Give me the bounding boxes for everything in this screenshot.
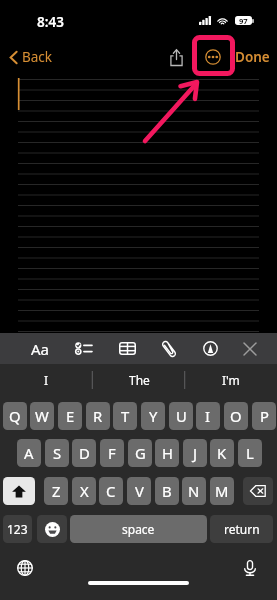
staticText: I (44, 372, 49, 388)
staticText: T (121, 406, 130, 426)
button[interactable]: Markup (195, 333, 225, 364)
staticText: B (162, 481, 172, 501)
button[interactable]: Table (112, 333, 142, 364)
button[interactable]: Backspace (243, 477, 273, 505)
button[interactable]: Done (234, 44, 270, 70)
button[interactable]: H (155, 439, 179, 467)
button[interactable]: C (99, 477, 123, 505)
staticText: O (230, 406, 242, 426)
button[interactable]: Attach (154, 333, 184, 364)
button[interactable]: Back (9, 44, 53, 70)
button[interactable]: Q (3, 402, 27, 430)
button[interactable]: More (200, 44, 226, 70)
button[interactable]: O (224, 402, 248, 430)
staticText: J (193, 443, 198, 463)
button[interactable]: Y (141, 402, 165, 430)
staticText: Q (9, 406, 21, 426)
staticText: M (215, 481, 229, 501)
button[interactable]: Format (25, 333, 55, 364)
staticText: U (176, 406, 187, 426)
button[interactable]: B (155, 477, 179, 505)
staticText: W (35, 406, 49, 426)
button[interactable]: W (30, 402, 54, 430)
button[interactable]: D (72, 439, 96, 467)
button[interactable]: 123 (3, 515, 32, 543)
button[interactable]: return (210, 515, 273, 543)
staticText: H (162, 443, 173, 463)
button[interactable]: I (0, 364, 93, 395)
button[interactable]: Share (163, 44, 189, 70)
button[interactable]: The (93, 364, 185, 395)
staticText: L (246, 443, 254, 463)
button[interactable]: L (238, 439, 262, 467)
button[interactable]: Close (235, 333, 265, 364)
button[interactable]: T (113, 402, 137, 430)
staticText: G (135, 443, 146, 463)
button[interactable]: Dictate (238, 556, 262, 580)
button[interactable]: space (70, 515, 207, 543)
button[interactable]: A (17, 439, 41, 467)
staticText: Aa (31, 339, 50, 359)
button[interactable]: U (169, 402, 193, 430)
button[interactable]: F (100, 439, 124, 467)
button[interactable]: Z (44, 477, 68, 505)
staticText: D (79, 443, 90, 463)
staticText: V (135, 481, 144, 501)
button[interactable]: J (183, 439, 207, 467)
staticText: K (217, 443, 227, 463)
staticText: Done (235, 48, 270, 66)
button[interactable]: S (45, 439, 69, 467)
button[interactable]: I (196, 402, 220, 430)
staticText: Z (52, 481, 61, 501)
button[interactable]: Shift (3, 477, 35, 505)
button[interactable]: N (182, 477, 206, 505)
staticText: return (224, 521, 260, 537)
button[interactable]: M (210, 477, 234, 505)
staticText: N (188, 481, 200, 501)
staticText: A (24, 443, 34, 463)
staticText: C (106, 481, 116, 501)
staticText: 97 (239, 16, 248, 25)
staticText: X (80, 481, 89, 501)
button[interactable]: V (127, 477, 151, 505)
staticText: I (205, 406, 211, 426)
staticText: Y (149, 406, 158, 426)
button[interactable]: Checklist (68, 333, 98, 364)
staticText: I'm (222, 372, 240, 388)
button[interactable]: P (252, 402, 276, 430)
button[interactable]: I'm (185, 364, 277, 395)
button[interactable]: Switch keyboard (13, 556, 37, 580)
staticText: S (53, 443, 62, 463)
staticText: space (122, 521, 155, 537)
button[interactable]: E (58, 402, 82, 430)
staticText: The (129, 372, 150, 388)
button[interactable]: X (72, 477, 96, 505)
button[interactable]: R (86, 402, 110, 430)
staticText: 123 (7, 521, 28, 537)
button[interactable]: Emoji (37, 515, 67, 543)
staticText: F (108, 443, 116, 463)
staticText: 8:43 (37, 13, 64, 31)
staticText: R (93, 406, 103, 426)
button[interactable]: K (210, 439, 234, 467)
button[interactable]: G (128, 439, 152, 467)
staticText: E (66, 406, 75, 426)
staticText: Back (22, 48, 53, 66)
staticText: P (260, 406, 269, 426)
